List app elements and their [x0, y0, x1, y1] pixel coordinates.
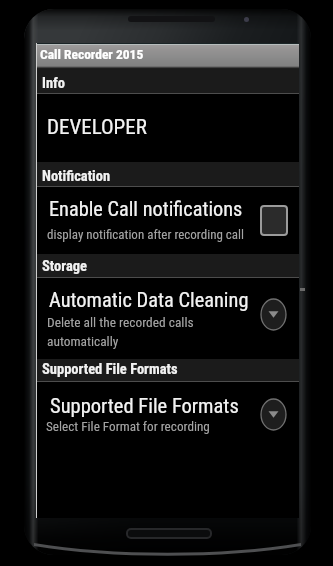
button[interactable]: DEVELOPER	[37, 94, 299, 162]
button[interactable]: Enable Call notifications	[37, 187, 299, 254]
button[interactable]: Enable Call notifications	[261, 206, 287, 235]
staticText: Info	[42, 75, 66, 92]
staticText: Call Recorder 2015	[40, 46, 144, 62]
staticText: Supported File Formats	[50, 394, 239, 418]
button[interactable]: Supported File Formats options	[260, 398, 287, 431]
staticText: Supported File Formats	[42, 361, 178, 378]
staticText: Enable Call notifications	[49, 197, 243, 221]
staticText: display notification after recording cal…	[47, 227, 245, 242]
staticText: Delete all the recorded calls automatica…	[47, 315, 194, 349]
staticText: DEVELOPER	[47, 115, 147, 140]
staticText: Notification	[42, 168, 111, 185]
button[interactable]: Automatic Data Cleaning	[37, 278, 299, 359]
button[interactable]: Automatic Data Cleaning options	[260, 298, 287, 331]
staticText: Select File Format for recording	[46, 419, 210, 434]
button[interactable]: Supported File Formats	[37, 382, 299, 449]
staticText: Storage	[42, 258, 87, 275]
staticText: Automatic Data Cleaning	[49, 288, 249, 312]
